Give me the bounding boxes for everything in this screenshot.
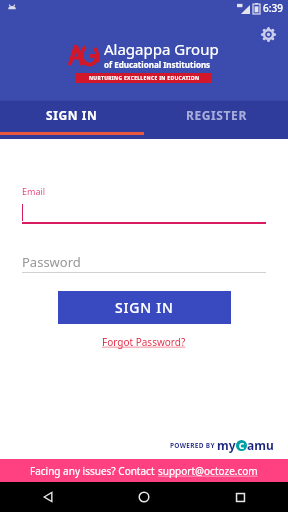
staticText: Alagappa Group [104, 39, 219, 59]
button[interactable]: SIGN IN [0, 97, 144, 132]
staticText: SIGN IN [46, 107, 98, 123]
staticText: POWERED BY [170, 441, 217, 450]
button[interactable]: Recent apps [192, 482, 288, 512]
staticText: support@octoze.com [158, 464, 258, 478]
staticText: Email [22, 185, 46, 197]
staticText: Password [22, 253, 81, 271]
staticText: SIGN IN [115, 298, 174, 317]
staticText: 6:39 [263, 1, 283, 15]
button[interactable]: Back [0, 482, 96, 512]
staticText: amu [247, 437, 274, 453]
button[interactable]: Home [96, 482, 192, 512]
staticText: REGISTER [186, 107, 247, 123]
button[interactable]: SIGN IN [58, 291, 231, 324]
staticText: my [217, 437, 236, 453]
button[interactable]: Facing any issues? Contact [0, 459, 288, 482]
button[interactable]: Settings [255, 21, 281, 47]
staticText: Facing any issues? Contact [30, 464, 158, 478]
staticText: NURTURING EXCELLENCE IN EDUCATION [89, 75, 200, 82]
button[interactable]: Email [22, 185, 266, 224]
button[interactable]: Password [22, 251, 266, 273]
button[interactable]: REGISTER [144, 97, 288, 132]
button[interactable]: Forgot Password? [102, 335, 186, 349]
staticText: of Educational Institutions [104, 59, 211, 70]
staticText: C [239, 440, 245, 451]
staticText: Forgot Password? [102, 335, 186, 349]
